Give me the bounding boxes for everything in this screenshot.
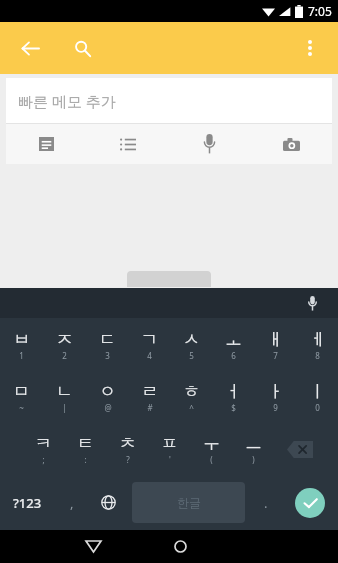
- staticText: ㅣ: [309, 381, 326, 402]
- staticText: 6: [231, 350, 236, 361]
- button[interactable]: ㅏ: [254, 371, 296, 423]
- staticText: ㅍ: [161, 433, 178, 454]
- button[interactable]: Change language: [88, 475, 128, 530]
- button[interactable]: ㅗ: [212, 318, 254, 371]
- button[interactable]: ㅔ: [296, 318, 338, 371]
- button[interactable]: ㄹ: [128, 371, 170, 423]
- button[interactable]: ㅌ: [64, 423, 106, 475]
- button[interactable]: ㅁ: [0, 371, 43, 423]
- button[interactable]: ㄱ: [128, 318, 170, 371]
- staticText: 4: [147, 350, 152, 361]
- button[interactable]: ㅎ: [170, 371, 212, 423]
- staticText: ㅓ: [225, 381, 242, 402]
- button[interactable]: ㅡ: [232, 423, 274, 475]
- button[interactable]: ㄴ: [43, 371, 86, 423]
- staticText: ?123: [13, 494, 42, 512]
- staticText: ㄴ: [56, 381, 73, 402]
- staticText: ㅌ: [77, 433, 94, 454]
- staticText: 한글: [177, 495, 201, 510]
- button[interactable]: ㅅ: [170, 318, 212, 371]
- staticText: 7:05: [308, 3, 332, 19]
- button[interactable]: ㄷ: [86, 318, 128, 371]
- staticText: ㅁ: [13, 381, 30, 402]
- staticText: ㅔ: [309, 329, 326, 350]
- button[interactable]: 한글: [132, 482, 245, 523]
- staticText: 1: [19, 350, 24, 361]
- staticText: ㅊ: [119, 433, 136, 454]
- staticText: ㅂ: [13, 329, 30, 350]
- staticText: ㅈ: [56, 329, 73, 350]
- staticText: ㄷ: [99, 329, 116, 350]
- staticText: ㅡ: [245, 433, 262, 454]
- button[interactable]: Back: [10, 28, 50, 68]
- button[interactable]: ㅋ: [22, 423, 64, 475]
- staticText: ㅜ: [203, 433, 220, 454]
- staticText: ': [169, 454, 171, 465]
- staticText: #: [147, 402, 153, 413]
- staticText: ): [252, 454, 255, 465]
- staticText: @: [104, 402, 112, 413]
- staticText: 빠른 메모 추가: [18, 91, 116, 111]
- button[interactable]: Text note: [6, 124, 87, 164]
- button[interactable]: ㅜ: [190, 423, 232, 475]
- button[interactable]: ,: [55, 475, 88, 530]
- staticText: ㅅ: [183, 329, 200, 350]
- staticText: 8: [315, 350, 320, 361]
- button[interactable]: ㅣ: [296, 371, 338, 423]
- staticText: ㄱ: [141, 329, 158, 350]
- staticText: ㅐ: [267, 329, 284, 350]
- button[interactable]: ?123: [0, 475, 55, 530]
- staticText: ~: [19, 402, 24, 413]
- staticText: :: [84, 454, 87, 465]
- button[interactable]: ㅈ: [43, 318, 86, 371]
- staticText: ?: [126, 454, 130, 465]
- button[interactable]: ㅐ: [254, 318, 296, 371]
- staticText: ㅇ: [99, 381, 116, 402]
- staticText: 9: [273, 402, 278, 413]
- staticText: ㄹ: [141, 381, 158, 402]
- staticText: .: [264, 494, 268, 512]
- staticText: ㅗ: [225, 329, 242, 350]
- button[interactable]: Voice note: [168, 124, 250, 164]
- staticText: ^: [189, 402, 194, 413]
- staticText: 5: [189, 350, 194, 361]
- button[interactable]: List note: [87, 124, 168, 164]
- staticText: $: [231, 402, 236, 413]
- button[interactable]: Close keyboard: [65, 530, 121, 563]
- staticText: 7: [273, 350, 278, 361]
- staticText: ㅏ: [267, 381, 284, 402]
- button[interactable]: Home: [152, 530, 208, 563]
- staticText: 2: [62, 350, 67, 361]
- staticText: ㅋ: [35, 433, 52, 454]
- button[interactable]: ㅊ: [106, 423, 148, 475]
- button[interactable]: Voice input: [298, 289, 326, 317]
- staticText: ;: [42, 454, 45, 465]
- button[interactable]: Photo note: [250, 124, 332, 164]
- button[interactable]: Search: [62, 28, 102, 68]
- staticText: |: [62, 402, 67, 413]
- staticText: 0: [315, 402, 320, 413]
- staticText: ㅎ: [183, 381, 200, 402]
- button[interactable]: Done: [282, 475, 338, 530]
- staticText: ,: [70, 494, 74, 512]
- button[interactable]: 빠른 메모 추가: [6, 78, 332, 123]
- button[interactable]: ㅂ: [0, 318, 43, 371]
- staticText: 3: [105, 350, 110, 361]
- button[interactable]: ㅇ: [86, 371, 128, 423]
- button[interactable]: More options: [290, 28, 330, 68]
- button[interactable]: Backspace: [274, 423, 325, 475]
- button[interactable]: ㅍ: [148, 423, 190, 475]
- button[interactable]: ㅓ: [212, 371, 254, 423]
- staticText: (: [210, 454, 213, 465]
